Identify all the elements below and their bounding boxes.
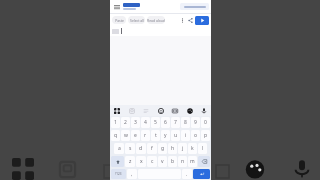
staticText: h [171,145,175,152]
staticText: Paste [115,18,124,23]
staticText: a [118,145,121,152]
button[interactable]: 5 [151,117,160,128]
staticText: 5 [154,119,157,126]
button[interactable]: x [136,156,146,167]
button[interactable]: 7 [171,117,180,128]
staticText: Read aloud [147,18,165,23]
button[interactable]: 6 [161,117,170,128]
staticText: l [202,145,204,152]
button[interactable]: c [147,156,157,167]
button[interactable]: Paste [112,16,126,24]
button[interactable]: o [191,130,200,141]
button[interactable]: q [111,130,120,141]
button[interactable]: Backspace [210,158,234,180]
staticText: 3 [134,119,137,126]
staticText: 1 [114,119,117,126]
button[interactable]: 8 [181,117,190,128]
staticText: p [204,132,208,139]
button[interactable]: z [125,156,135,167]
staticText: d [139,145,143,152]
staticText: , [131,171,133,178]
button[interactable]: Emoji [156,106,166,116]
staticText: q [114,132,118,139]
button[interactable]: d [136,143,146,154]
button[interactable]: Stickers [240,156,270,180]
staticText: 8 [184,119,187,126]
staticText: i [185,132,187,139]
button[interactable]: t [151,130,160,141]
button[interactable]: Voice input [199,106,209,116]
button[interactable]: s [125,143,135,154]
button[interactable]: f [147,143,157,154]
staticText: o [194,132,198,139]
button[interactable]: App title [123,3,140,10]
button[interactable]: g [158,143,167,154]
button[interactable]: 1 [111,117,120,128]
button[interactable]: Clipboard [52,156,82,180]
button[interactable]: Translate [195,16,209,25]
button[interactable]: Symbols [111,169,126,179]
button[interactable]: r [141,130,150,141]
button[interactable]: Text editing [141,106,151,116]
button[interactable]: e [131,130,140,141]
button[interactable]: v [158,156,167,167]
staticText: w [124,132,128,139]
button[interactable]: 4 [141,117,150,128]
button[interactable]: j [178,143,187,154]
button[interactable]: a [114,143,124,154]
button[interactable]: Enter [193,169,210,179]
staticText: n [181,158,185,165]
staticText: 7 [174,119,177,126]
staticText: g [161,145,165,152]
button[interactable]: b [168,156,177,167]
button[interactable]: y [161,130,170,141]
staticText: 6 [164,119,167,126]
button[interactable]: h [168,143,177,154]
button[interactable]: Read aloud [147,16,165,24]
button[interactable]: Clipboard [127,106,137,116]
staticText: . [186,171,188,178]
button[interactable]: m [188,156,197,167]
button[interactable]: l [198,143,207,154]
button[interactable]: p [201,130,210,141]
staticText: x [140,158,143,165]
button[interactable]: Upgrade [180,3,209,10]
button[interactable]: k [188,143,197,154]
staticText: k [191,145,194,152]
button[interactable]: Select all [128,16,145,24]
staticText: s [129,145,132,152]
button[interactable]: i [181,130,190,141]
staticText: z [129,158,132,165]
staticText: 4 [144,119,147,126]
staticText: j [182,145,184,152]
staticText: ?123 [115,172,122,176]
staticText: y [164,132,167,139]
button[interactable]: u [171,130,180,141]
staticText: f [151,145,153,152]
button[interactable]: Apps grid [112,106,122,116]
button[interactable]: 0 [201,117,210,128]
button[interactable]: Menu [112,2,121,11]
staticText: 0 [204,119,207,126]
button[interactable]: Shift [111,156,124,167]
button[interactable]: More options [179,17,186,24]
button[interactable]: Text [98,158,122,180]
button[interactable]: Voice input [288,156,316,180]
button[interactable]: Stickers [185,106,195,116]
button[interactable]: 9 [191,117,200,128]
button[interactable]: Backspace [198,156,210,167]
button[interactable]: n [178,156,187,167]
button[interactable]: Share [186,16,194,24]
staticText: 2 [124,119,127,126]
button[interactable]: 3 [131,117,140,128]
button[interactable]: . [182,169,192,179]
button[interactable]: GIF [170,106,180,116]
button[interactable]: 2 [121,117,130,128]
button[interactable]: Apps grid [6,156,40,180]
button[interactable]: , [127,169,137,179]
button[interactable]: w [121,130,130,141]
staticText: u [174,132,178,139]
staticText: b [171,158,175,165]
